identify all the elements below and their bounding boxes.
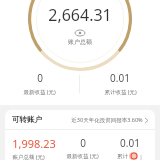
button[interactable]: 2,664.31	[48, 4, 112, 46]
staticText: 1,998.23	[12, 136, 56, 151]
button[interactable]: 0	[0, 71, 79, 96]
staticText: 账户总额 (元)	[12, 153, 45, 160]
staticText: 可转账户	[12, 115, 42, 124]
staticText: 0	[37, 71, 43, 85]
other: Info	[129, 152, 138, 160]
staticText: 近30天年化投资回报率3.60%	[71, 116, 143, 124]
other: Toggle amount visibility	[75, 30, 85, 36]
staticText: 最新收益 (元)	[66, 152, 99, 160]
button[interactable]: 可转账户	[5, 110, 155, 160]
staticText: 累计收益 (元)	[104, 88, 137, 96]
staticText: 2,664.31	[48, 4, 112, 26]
staticText: 最新收益 (元)	[23, 88, 56, 96]
staticText: 0.01	[120, 136, 140, 150]
staticText: 0	[80, 136, 86, 150]
staticText: 0.01	[110, 71, 130, 85]
staticText: |	[139, 153, 143, 160]
staticText: 累计	[117, 153, 128, 160]
staticText: 账户总额	[68, 38, 92, 46]
button[interactable]: 0.01	[80, 71, 160, 96]
